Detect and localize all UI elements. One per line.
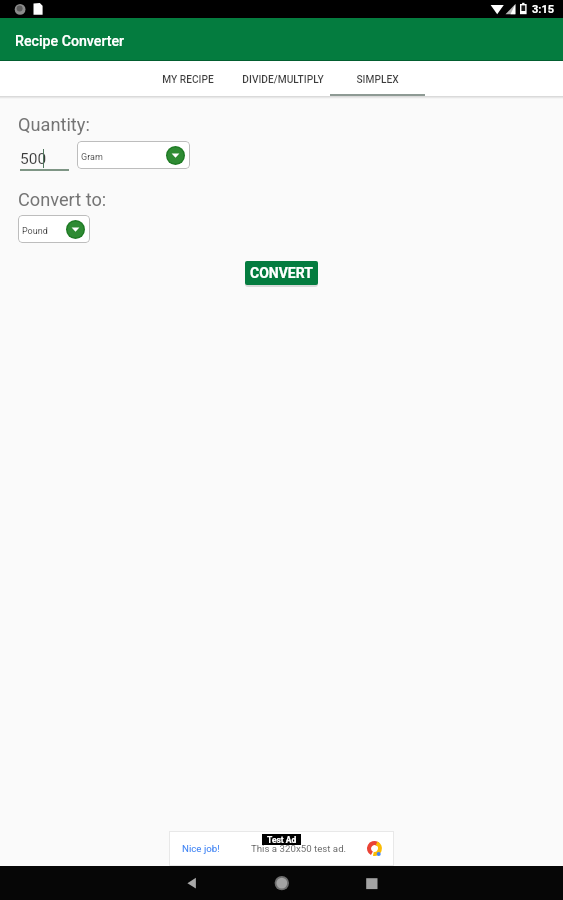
staticText: CONVERT	[250, 265, 313, 281]
staticText: Pound	[22, 226, 48, 237]
staticText: MY RECIPE	[162, 74, 214, 86]
button[interactable]: Gram	[77, 141, 190, 169]
button[interactable]: Recents	[347, 866, 397, 900]
staticText: DIVIDE/MULTIPLY	[242, 74, 324, 86]
staticText: Recipe Converter	[15, 33, 125, 50]
button[interactable]: MY RECIPE	[140, 61, 235, 96]
staticText: SIMPLEX	[356, 74, 399, 86]
button[interactable]: Pound	[18, 215, 90, 243]
button[interactable]: Nice job!	[169, 831, 394, 866]
button[interactable]: Back	[167, 866, 217, 900]
button[interactable]: 500	[20, 141, 70, 171]
staticText: Nice job!	[182, 843, 220, 854]
button[interactable]: CONVERT	[245, 261, 318, 285]
staticText: Test Ad	[267, 835, 297, 845]
staticText: Convert to:	[18, 189, 107, 210]
staticText: 500	[20, 150, 47, 168]
button[interactable]: DIVIDE/MULTIPLY	[235, 61, 330, 96]
staticText: This a 320x50 test ad.	[251, 843, 347, 854]
staticText: Gram	[81, 152, 103, 163]
staticText: Quantity:	[18, 114, 90, 135]
button[interactable]: SIMPLEX	[330, 61, 425, 96]
staticText: 3:15	[532, 3, 555, 16]
button[interactable]: Home	[257, 866, 307, 900]
